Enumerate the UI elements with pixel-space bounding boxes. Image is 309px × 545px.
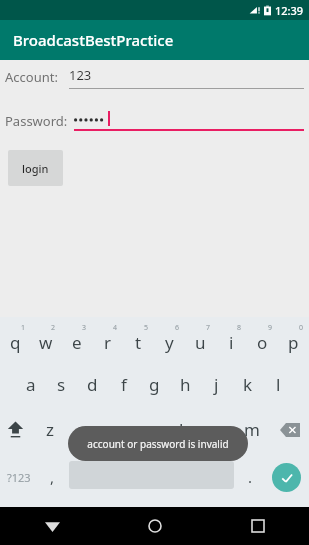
button[interactable]: 6: [154, 317, 185, 362]
staticText: 8: [237, 323, 242, 333]
staticText: s: [57, 373, 66, 396]
staticText: account or password is invalid: [87, 437, 229, 451]
staticText: x: [78, 418, 87, 441]
button[interactable]: 4: [92, 317, 123, 362]
staticText: o: [257, 331, 268, 354]
staticText: 6: [175, 323, 180, 333]
staticText: q: [10, 331, 21, 354]
button[interactable]: Enter: [272, 463, 301, 492]
staticText: v: [146, 418, 155, 441]
button[interactable]: Recent apps: [235, 507, 281, 545]
button[interactable]: Shift: [0, 407, 31, 452]
button[interactable]: .: [237, 452, 263, 502]
button[interactable]: z: [33, 407, 66, 452]
staticText: Password:: [5, 112, 68, 130]
staticText: z: [46, 418, 54, 441]
button[interactable]: ?123: [0, 452, 38, 502]
button[interactable]: 0: [278, 317, 309, 362]
button[interactable]: g: [139, 362, 170, 407]
staticText: k: [243, 373, 253, 396]
staticText: f: [121, 373, 127, 396]
button[interactable]: k: [232, 362, 263, 407]
button[interactable]: v: [133, 407, 167, 452]
button[interactable]: Home: [132, 507, 178, 545]
staticText: a: [26, 373, 36, 396]
staticText: 5: [144, 323, 149, 333]
staticText: Account:: [5, 68, 58, 86]
button[interactable]: login: [8, 150, 63, 186]
button[interactable]: 3: [61, 317, 92, 362]
staticText: ?123: [7, 470, 31, 485]
staticText: 1: [21, 323, 26, 333]
staticText: 7: [206, 323, 211, 333]
button[interactable]: n: [201, 407, 235, 452]
staticText: ,: [50, 467, 55, 487]
staticText: BroadcastBestPractice: [13, 30, 174, 50]
button[interactable]: 2: [30, 317, 61, 362]
button[interactable]: 7: [185, 317, 216, 362]
staticText: .: [248, 467, 253, 487]
staticText: b: [179, 418, 190, 441]
staticText: login: [22, 161, 49, 176]
button[interactable]: d: [77, 362, 108, 407]
staticText: n: [213, 418, 224, 441]
button[interactable]: x: [66, 407, 99, 452]
staticText: 12:39: [275, 3, 304, 18]
button[interactable]: 8: [216, 317, 247, 362]
staticText: i: [229, 331, 234, 354]
staticText: c: [112, 418, 121, 441]
button[interactable]: m: [235, 407, 269, 452]
button[interactable]: h: [170, 362, 201, 407]
button[interactable]: c: [99, 407, 133, 452]
staticText: 9: [268, 323, 273, 333]
button[interactable]: s: [46, 362, 77, 407]
button[interactable]: ,: [38, 452, 66, 502]
staticText: m: [244, 418, 260, 441]
staticText: e: [72, 331, 82, 354]
button[interactable]: b: [167, 407, 201, 452]
staticText: 2: [51, 323, 56, 333]
staticText: j: [214, 373, 219, 396]
staticText: l: [276, 373, 281, 396]
button[interactable]: j: [201, 362, 232, 407]
staticText: u: [195, 331, 206, 354]
staticText: r: [104, 331, 112, 354]
button[interactable]: Backspace: [271, 407, 309, 452]
button[interactable]: l: [263, 362, 294, 407]
button[interactable]: 1: [0, 317, 30, 362]
staticText: y: [165, 331, 174, 354]
button[interactable]: a: [15, 362, 46, 407]
button[interactable]: f: [108, 362, 139, 407]
staticText: 123: [69, 66, 92, 84]
button[interactable]: 5: [123, 317, 154, 362]
staticText: 3: [82, 323, 87, 333]
staticText: h: [180, 373, 191, 396]
staticText: 0: [299, 323, 304, 333]
button[interactable]: 9: [247, 317, 278, 362]
staticText: t: [135, 331, 142, 354]
staticText: w: [39, 331, 53, 354]
staticText: p: [288, 331, 299, 354]
button[interactable]: Back: [29, 507, 75, 545]
staticText: d: [87, 373, 98, 396]
staticText: g: [149, 373, 160, 396]
staticText: 4: [113, 323, 118, 333]
